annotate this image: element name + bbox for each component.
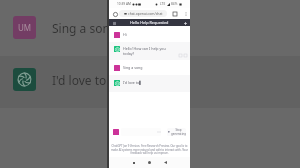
button[interactable]: Back (161, 158, 170, 167)
button[interactable]: Thumbs down (183, 53, 188, 58)
staticText: I'd love to▌ (123, 80, 143, 85)
staticText: chat.openai.com/chat (128, 11, 163, 16)
staticText: Hello Help Requested (130, 20, 169, 25)
staticText: Hi (123, 32, 127, 37)
staticText: UM (18, 22, 32, 33)
button[interactable]: Home (145, 158, 154, 167)
button[interactable]: Thumbs up (178, 53, 183, 58)
button[interactable]: New chat (182, 20, 188, 26)
staticText: Sing a song (123, 65, 143, 70)
staticText: LTE (160, 2, 166, 6)
staticText: 84% (171, 2, 178, 6)
staticText: I'd love to (52, 72, 110, 88)
button[interactable]: Tabs (171, 10, 179, 18)
staticText: 10:39 AM (117, 2, 131, 6)
staticText: Sing a song (52, 20, 118, 36)
staticText: ChatGPT Jan 9 Version. Free Research Pre… (110, 144, 189, 154)
staticText: Hello! How can I help you today? (123, 46, 166, 56)
staticText: Stop generating (171, 128, 186, 136)
button[interactable]: Recent apps (129, 158, 138, 167)
button[interactable]: Stop generating (167, 128, 186, 136)
button[interactable]: Menu (111, 20, 117, 26)
button[interactable]: More options (183, 11, 188, 16)
button[interactable]: chat.openai.com/chat (119, 10, 167, 17)
button[interactable]: Site information (111, 10, 119, 18)
